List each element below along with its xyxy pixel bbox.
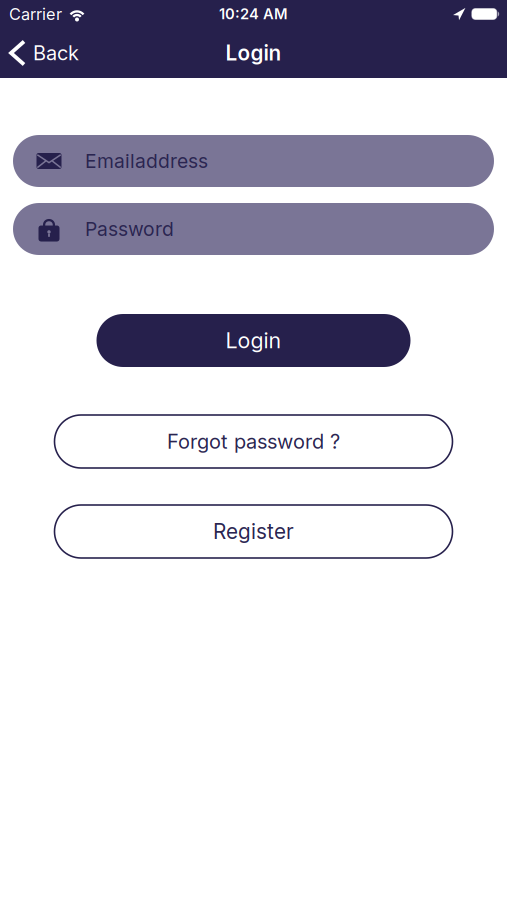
button[interactable]: Password [0,203,507,255]
staticText: Login [225,40,281,66]
staticText: Forgot password ? [167,429,340,454]
staticText: Back [33,41,79,65]
staticText: Emailaddress [85,149,208,173]
staticText: Password [85,217,174,241]
button[interactable]: Emailaddress [0,135,507,187]
staticText: Carrier [9,4,62,24]
staticText: Register [213,519,294,544]
staticText: Login [225,327,281,353]
button[interactable]: Register [54,505,452,558]
button[interactable]: Back [0,41,79,65]
button[interactable]: Forgot password ? [54,415,452,468]
staticText: 10:24 AM [219,5,288,23]
button[interactable]: Login [96,314,410,367]
